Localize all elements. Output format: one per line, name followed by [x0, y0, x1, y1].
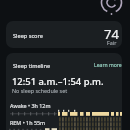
button[interactable] [6, 53, 122, 130]
staticText: 74 [104, 25, 119, 43]
staticText: REM • 1h 55m [10, 119, 46, 126]
button[interactable] [99, 0, 125, 26]
staticText: Sleep timeline [13, 62, 51, 70]
button[interactable] [91, 58, 122, 70]
staticText: Learn more [94, 62, 122, 69]
button[interactable] [6, 21, 122, 48]
staticText: Sleep score [13, 32, 43, 40]
staticText: Fair [107, 39, 117, 46]
staticText: Awake • 3h 12m [10, 102, 51, 109]
staticText: 12:51 a.m.–1:54 p.m. [12, 75, 104, 88]
staticText: No sleep schedule set [12, 87, 68, 94]
